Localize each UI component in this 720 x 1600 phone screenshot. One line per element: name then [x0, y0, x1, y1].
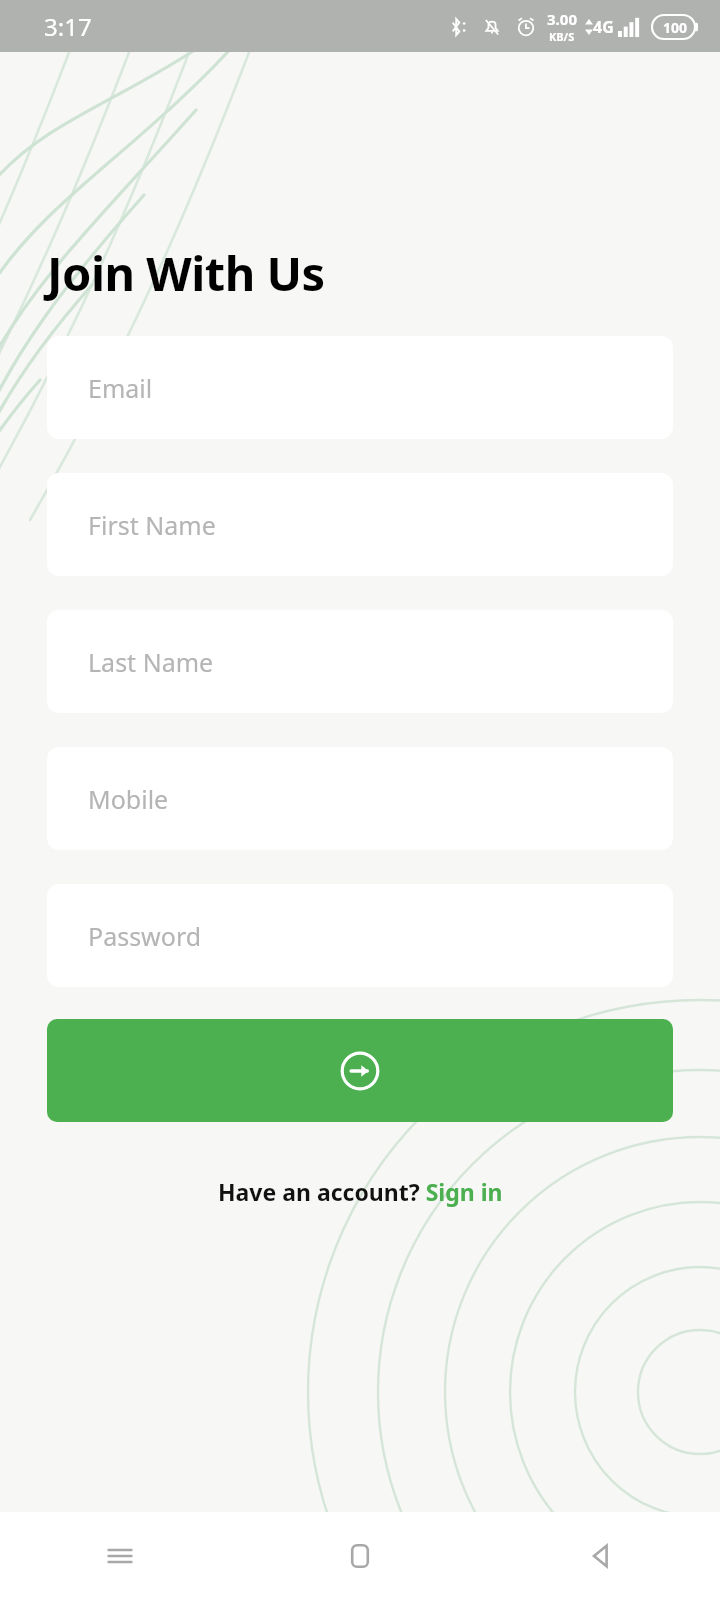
button[interactable]: Sign up	[47, 1019, 673, 1122]
staticText: Last Name	[88, 645, 214, 679]
button[interactable]: Mobile	[47, 747, 673, 850]
button[interactable]: Back	[480, 1512, 720, 1600]
staticText: 100	[663, 18, 688, 37]
button[interactable]: First Name	[47, 473, 673, 576]
button[interactable]: Email	[47, 336, 673, 439]
button[interactable]: Home	[240, 1512, 480, 1600]
staticText: Mobile	[88, 782, 169, 816]
staticText: 4G	[593, 16, 614, 38]
staticText: Join With Us	[47, 241, 325, 305]
staticText: Password	[88, 919, 202, 953]
button[interactable]: Last Name	[47, 610, 673, 713]
button[interactable]: Password	[47, 884, 673, 987]
button[interactable]: Have an account? Sign in	[0, 1176, 720, 1207]
staticText: First Name	[88, 508, 216, 542]
staticText: 3:17	[44, 10, 92, 43]
staticText: Have an account? Sign in	[218, 1176, 503, 1207]
button[interactable]: Recent apps	[0, 1512, 240, 1600]
staticText: KB/S	[549, 29, 575, 44]
staticText: 3.00	[547, 9, 577, 29]
staticText: Email	[88, 371, 153, 405]
